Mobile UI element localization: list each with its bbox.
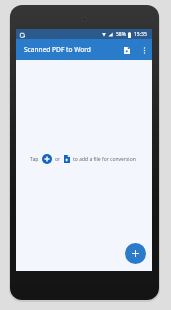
- button[interactable]: Open document: [118, 41, 136, 59]
- button[interactable]: Add file: [125, 243, 146, 264]
- staticText: Scanned PDF to Word: [24, 45, 91, 54]
- staticText: 58%: [116, 31, 126, 38]
- staticText: to add a file for conversion: [73, 156, 136, 163]
- staticText: 15:35: [134, 31, 147, 38]
- staticText: or: [55, 156, 61, 163]
- staticText: Tap: [30, 156, 39, 163]
- button[interactable]: More options: [136, 42, 152, 58]
